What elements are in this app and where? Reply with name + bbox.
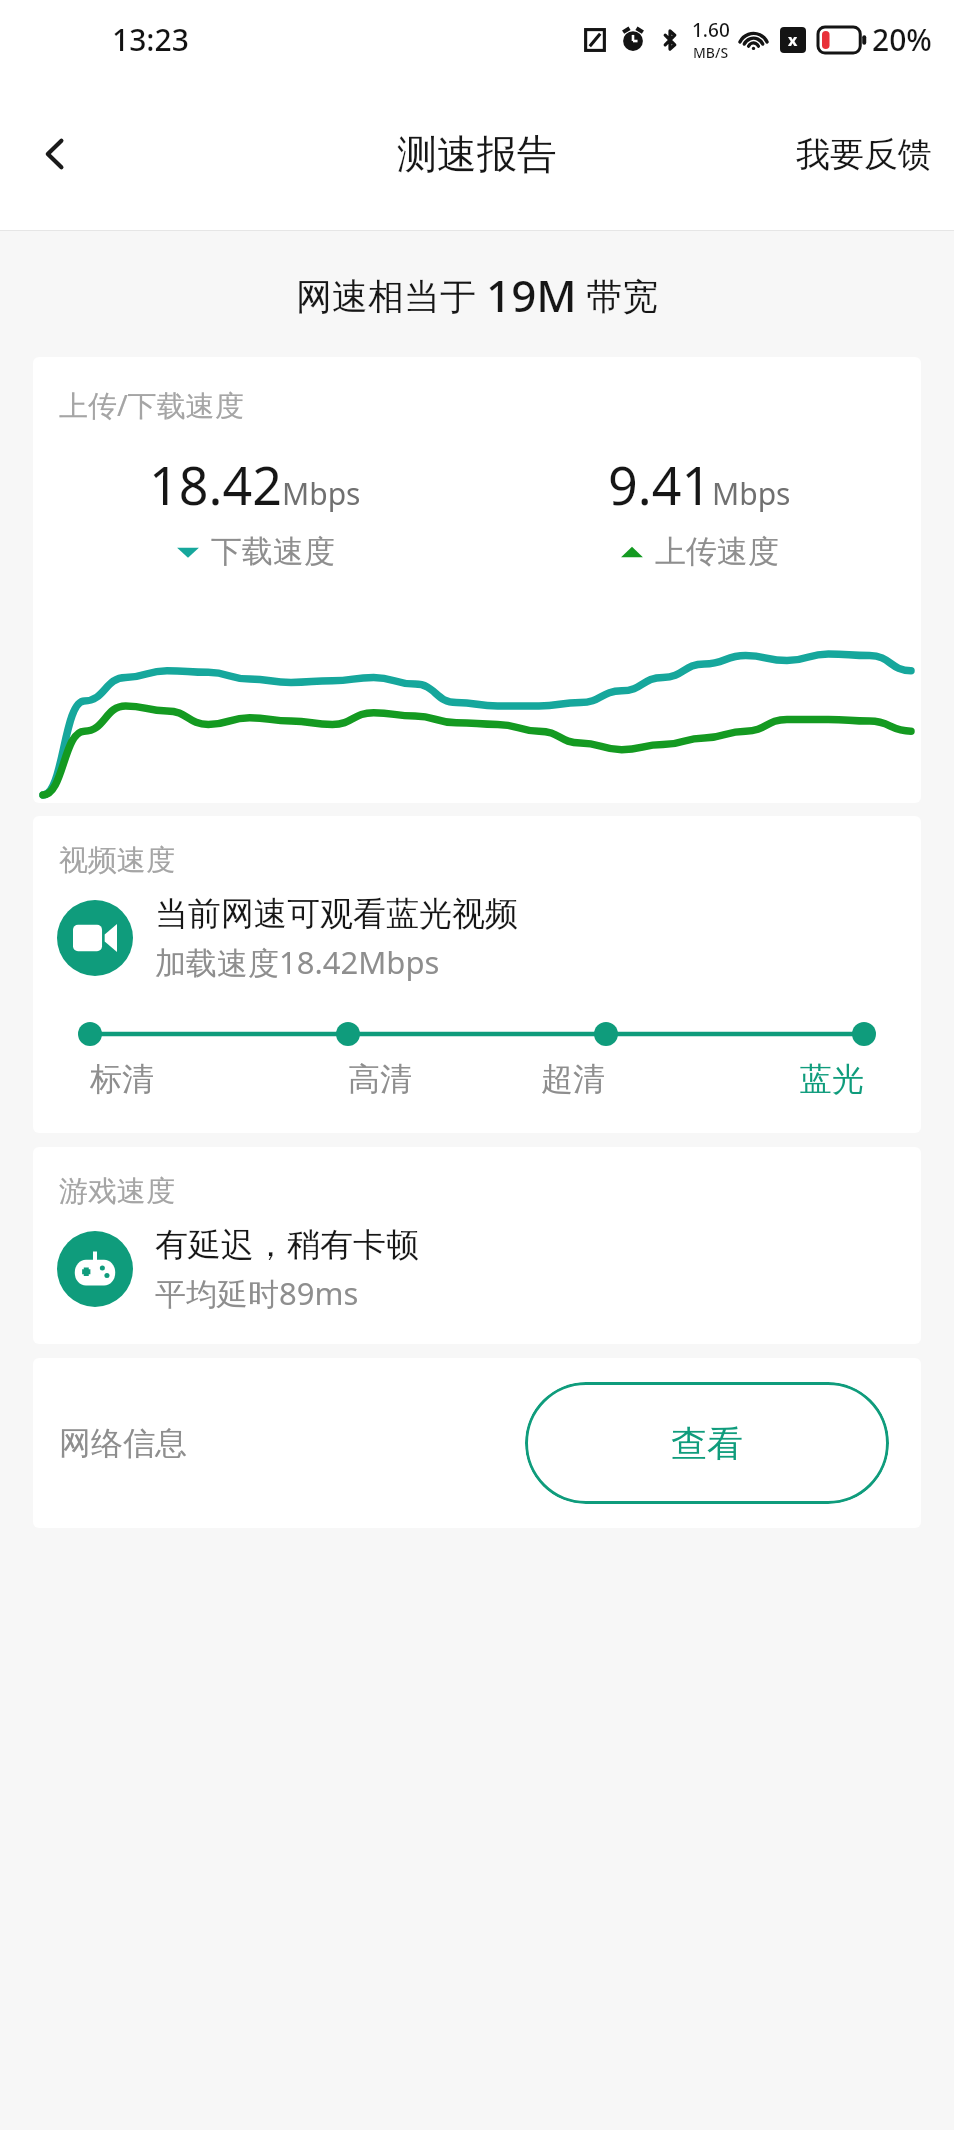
- staticText: Mbps: [282, 473, 361, 514]
- staticText: 13:23: [112, 19, 189, 60]
- staticText: 18.42: [149, 449, 282, 520]
- button[interactable]: 查看: [525, 1382, 889, 1504]
- button[interactable]: 游戏速度: [33, 1147, 921, 1344]
- staticText: 网速相当于: [296, 271, 486, 320]
- staticText: 高清: [348, 1059, 412, 1099]
- staticText: 20%: [872, 19, 932, 60]
- button[interactable]: 上传/下载速度: [33, 357, 921, 803]
- staticText: 当前网速可观看蓝光视频: [155, 893, 518, 935]
- staticText: 有延迟，稍有卡顿: [155, 1224, 419, 1266]
- staticText: 游戏速度: [59, 1173, 175, 1210]
- staticText: 我要反馈: [796, 133, 932, 176]
- staticText: x: [788, 29, 798, 51]
- staticText: 上传速度: [655, 532, 779, 571]
- staticText: 蓝光: [800, 1059, 864, 1099]
- staticText: 9.41: [608, 449, 712, 520]
- staticText: 平均延时89ms: [155, 1272, 359, 1314]
- staticText: 加载速度18.42Mbps: [155, 941, 440, 983]
- staticText: 网络信息: [59, 1423, 187, 1463]
- staticText: 下载速度: [211, 532, 335, 571]
- staticText: MB/S: [693, 43, 729, 62]
- staticText: 带宽: [577, 271, 659, 320]
- button[interactable]: 视频速度: [33, 816, 921, 1133]
- staticText: 超清: [541, 1059, 605, 1099]
- staticText: 上传/下载速度: [59, 385, 244, 425]
- button[interactable]: Back: [0, 78, 110, 230]
- staticText: 19M: [486, 265, 577, 325]
- staticText: Mbps: [712, 473, 791, 514]
- button[interactable]: 我要反馈: [774, 78, 954, 230]
- staticText: 1.60: [692, 17, 730, 43]
- staticText: 测速报告: [397, 129, 557, 179]
- staticText: 查看: [671, 1421, 743, 1466]
- staticText: 标清: [90, 1059, 154, 1099]
- staticText: 视频速度: [59, 842, 175, 879]
